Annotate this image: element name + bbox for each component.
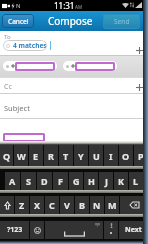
button[interactable]: Q [0,145,13,166]
button[interactable]: Period [104,221,118,239]
button[interactable]: Space [45,221,103,239]
staticText: P [138,150,144,162]
staticText: R [48,150,54,162]
button[interactable]: ?123 [0,221,29,239]
staticText: B [79,199,85,211]
staticText: Compose [48,14,93,28]
button[interactable]: I [104,145,118,166]
staticText: H [88,175,95,187]
button[interactable]: 4 matches [3,40,47,51]
staticText: E [33,150,39,162]
button[interactable]: Send [103,14,140,29]
button[interactable]: B [75,196,89,214]
button[interactable]: Add recipient [134,45,145,56]
button[interactable]: J [99,172,113,190]
button[interactable]: Y [74,145,88,166]
staticText: T [63,150,69,162]
staticText: AM [75,4,82,10]
staticText: Cancel [8,17,29,26]
staticText: Next [125,225,142,235]
staticText: Z [19,199,25,211]
button[interactable]: A [5,172,20,190]
staticText: J [105,175,108,187]
button[interactable]: M [105,196,119,214]
button[interactable]: Emoji [30,221,44,239]
button[interactable]: F [53,172,68,190]
button[interactable]: N [90,196,104,214]
staticText: X [34,199,41,211]
staticText: S [26,175,31,187]
staticText: K [118,175,124,187]
staticText: L [133,175,139,187]
button[interactable]: G [69,172,83,190]
staticText: To [4,33,11,41]
button[interactable]: O [119,145,133,166]
button[interactable]: Backspace [120,196,148,214]
staticText: Send [114,17,130,26]
staticText: Cc [4,82,12,92]
staticText: Y [78,150,84,162]
button[interactable] [63,61,117,71]
staticText: G [73,175,80,187]
button[interactable]: T [59,145,73,166]
staticText: A [9,175,16,187]
staticText: O [122,150,130,162]
button[interactable]: W [14,145,28,166]
staticText: Q [3,150,11,162]
button[interactable] [3,61,57,71]
button[interactable]: V [60,196,74,214]
button[interactable]: H [84,172,98,190]
staticText: N [16,2,21,10]
button[interactable]: Add recipient [134,82,145,93]
button[interactable]: X [30,196,44,214]
staticText: C [49,199,55,211]
staticText: 4 matches [13,41,47,50]
staticText: 11:31 [54,0,75,11]
button[interactable]: S [21,172,36,190]
button[interactable]: L [129,172,143,190]
button[interactable]: D [37,172,52,190]
button[interactable]: Cancel [2,14,34,28]
staticText: Subject [4,103,30,113]
button[interactable]: Z [15,196,29,214]
staticText: U [93,150,100,162]
staticText: V [64,199,70,211]
button[interactable]: U [89,145,103,166]
staticText: ?123 [7,225,23,235]
button[interactable]: K [114,172,128,190]
button[interactable]: R [44,145,58,166]
staticText: M [108,199,117,211]
staticText: F [58,175,63,187]
button[interactable]: E [29,145,43,166]
staticText: N [93,199,101,211]
staticText: D [41,175,48,187]
button[interactable]: Next [119,221,148,239]
button[interactable]: C [45,196,59,214]
staticText: W [17,150,26,162]
button[interactable]: P [134,145,148,166]
button[interactable]: Shift [0,196,14,214]
staticText: I [109,150,113,162]
